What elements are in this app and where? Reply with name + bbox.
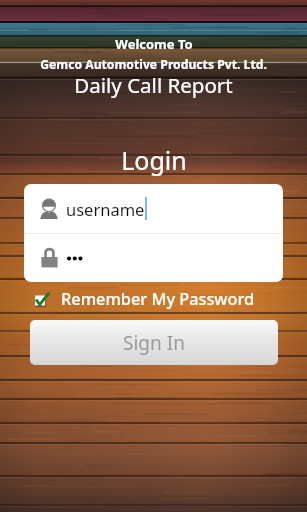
button[interactable] bbox=[24, 234, 283, 282]
staticText: Login bbox=[121, 143, 187, 177]
staticText: Remember My Password bbox=[61, 288, 255, 310]
staticText: username bbox=[66, 198, 145, 220]
button[interactable]: Remember My Password bbox=[33, 287, 255, 311]
button[interactable]: Sign In bbox=[30, 320, 278, 365]
button[interactable]: username bbox=[24, 184, 283, 233]
staticText: Sign In bbox=[123, 330, 185, 356]
staticText: Welcome To bbox=[115, 35, 193, 53]
staticText: Gemco Automotive Products Pvt. Ltd. bbox=[40, 56, 267, 73]
staticText: Daily Call Report bbox=[74, 71, 233, 99]
